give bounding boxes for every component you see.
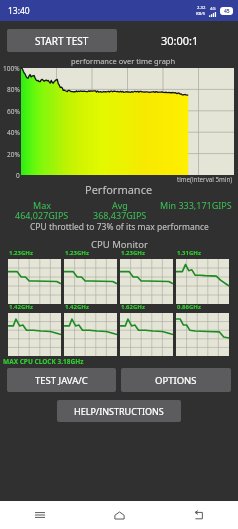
button[interactable]: OPTIONS <box>121 368 231 392</box>
staticText: 0 <box>16 171 20 180</box>
staticText: TEST JAVA/C <box>35 374 88 387</box>
staticText: 30:00:1 <box>161 33 199 48</box>
staticText: 4G <box>210 6 216 12</box>
staticText: Performance <box>85 182 153 197</box>
staticText: HELP/INSTRUCTIONS <box>74 405 164 417</box>
staticText: START TEST <box>35 34 89 48</box>
button[interactable]: START TEST <box>7 29 117 52</box>
button[interactable]: Back <box>159 501 238 529</box>
staticText: 60% <box>7 107 20 116</box>
staticText: MAX CPU CLOCK 3.18GHz <box>3 357 84 366</box>
staticText: 1.31GHz <box>177 249 201 257</box>
staticText: 1.42GHz <box>9 303 33 311</box>
staticText: 2.32 <box>197 5 206 11</box>
staticText: CPU Monitor <box>91 238 148 251</box>
staticText: 45 <box>224 8 230 15</box>
staticText: 1.42GHz <box>65 303 89 311</box>
staticText: 1.23GHz <box>121 249 145 257</box>
staticText: CPU throttled to 73% of its max performa… <box>30 221 209 233</box>
staticText: 1.23GHz <box>65 249 89 257</box>
staticText: performance over time graph <box>71 56 176 66</box>
staticText: 0.86GHz <box>177 303 201 311</box>
staticText: 80% <box>7 85 20 94</box>
staticText: 100% <box>3 64 20 73</box>
button[interactable]: Recent apps <box>0 501 80 529</box>
staticText: 13:40 <box>8 5 30 17</box>
staticText: 20% <box>7 150 20 159</box>
staticText: OPTIONS <box>155 374 197 387</box>
staticText: Min 333,171GIPS <box>160 199 232 211</box>
button[interactable]: HELP/INSTRUCTIONS <box>57 400 181 422</box>
button[interactable]: Home <box>80 501 159 529</box>
staticText: 1.62GHz <box>121 303 145 311</box>
staticText: 1.23GHz <box>9 249 33 257</box>
staticText: 368,437GIPS <box>93 209 147 221</box>
staticText: Avg <box>112 199 128 211</box>
staticText: 464,027GIPS <box>15 209 69 221</box>
button[interactable]: TEST JAVA/C <box>7 368 116 392</box>
staticText: time(interval 5min) <box>177 175 233 183</box>
staticText: KB/S <box>196 11 206 17</box>
staticText: 40% <box>7 128 20 137</box>
staticText: Max <box>33 199 51 211</box>
